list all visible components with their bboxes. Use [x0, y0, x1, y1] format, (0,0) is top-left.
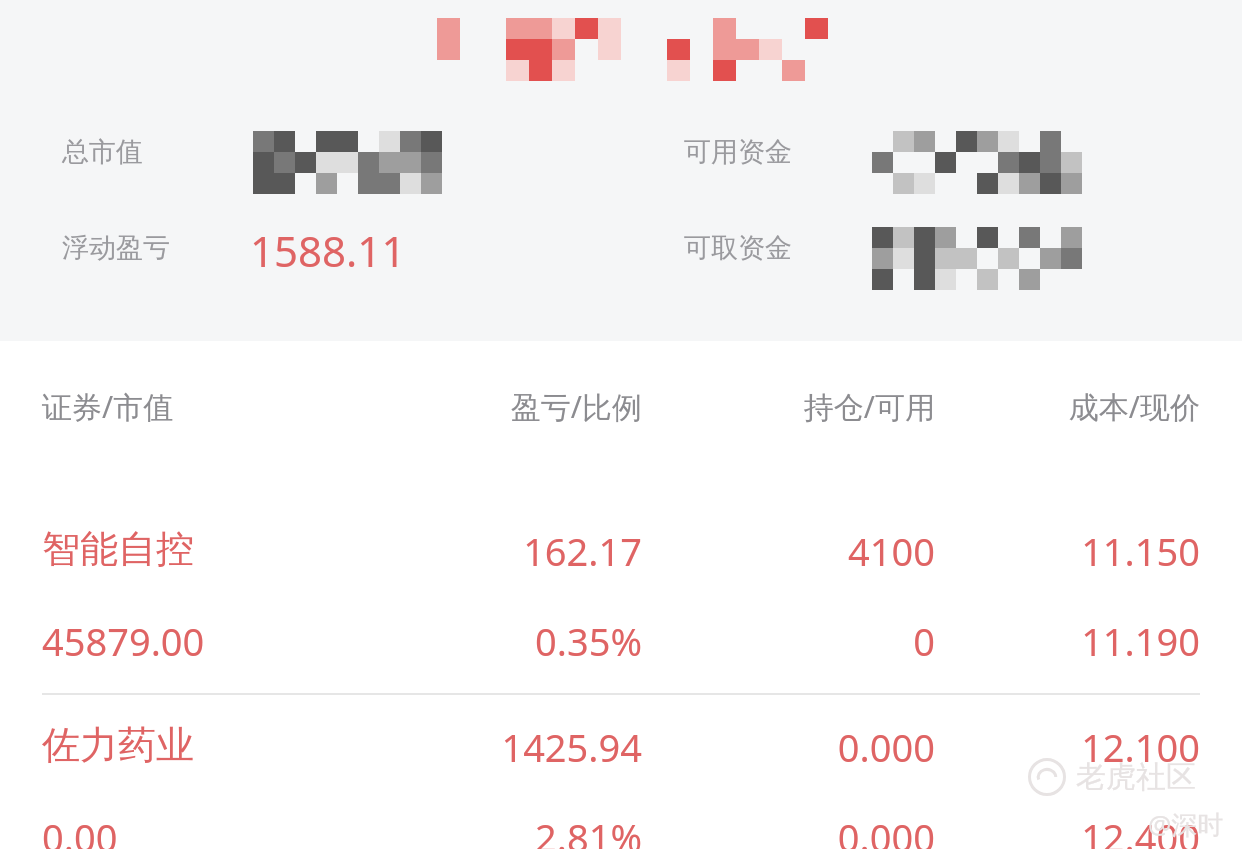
- button[interactable]: 智能自控: [0, 499, 1242, 693]
- staticText: 2.81%: [342, 811, 642, 849]
- staticText: 0.00: [42, 811, 342, 849]
- staticText: 成本/现价: [935, 386, 1200, 427]
- staticText: 总市值: [62, 135, 143, 169]
- staticText: 1588.11: [250, 222, 406, 279]
- staticText: 0.000: [642, 811, 935, 849]
- staticText: 浮动盈亏: [62, 231, 170, 265]
- staticText: 12.100: [935, 721, 1200, 773]
- staticText: 0.000: [642, 721, 935, 773]
- staticText: 1425.94: [342, 721, 642, 773]
- staticText: @深时: [1148, 806, 1224, 842]
- staticText: 162.17: [342, 525, 642, 577]
- staticText: 智能自控: [42, 525, 342, 573]
- staticText: 45879.00: [42, 615, 342, 667]
- staticText: 持仓/可用: [642, 386, 935, 427]
- staticText: 4100: [642, 525, 935, 577]
- staticText: 可取资金: [684, 231, 792, 265]
- staticText: 0: [642, 615, 935, 667]
- staticText: 老虎社区: [1076, 758, 1196, 796]
- staticText: 可用资金: [684, 135, 792, 169]
- staticText: 11.190: [935, 615, 1200, 667]
- button[interactable]: 佐力药业: [0, 695, 1242, 849]
- staticText: 佐力药业: [42, 721, 342, 769]
- staticText: 盈亏/比例: [342, 386, 642, 427]
- staticText: 11.150: [935, 525, 1200, 577]
- staticText: 0.35%: [342, 615, 642, 667]
- staticText: 12.400: [935, 811, 1200, 849]
- staticText: 证券/市值: [42, 386, 342, 427]
